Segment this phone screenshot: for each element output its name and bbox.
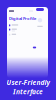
staticText: Interface [13, 87, 43, 96]
staticText: Digital Profile [9, 16, 36, 21]
button[interactable] [9, 34, 27, 36]
button[interactable]: Get started [36, 8, 44, 11]
button[interactable] [9, 29, 27, 31]
button[interactable] [9, 24, 27, 26]
staticText: User-Friendly [6, 78, 49, 87]
